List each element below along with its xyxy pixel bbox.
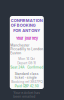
staticText: Seat 24A Confirmed <box>10 65 43 69</box>
staticText: Paid GBP 42.50 <box>15 84 39 88</box>
staticText: Booking ref XK47PQ <box>11 80 42 84</box>
staticText: CONFIRMATION OF BOOKING <box>11 18 43 28</box>
staticText: Your journey <box>16 36 38 41</box>
staticText: Mon 14 Oct <box>18 57 35 61</box>
staticText: FOR ANTONY <box>13 28 40 33</box>
staticText: Standard class ticket - single <box>15 72 39 79</box>
staticText: Manchester Piccadilly to London Euston <box>10 43 43 55</box>
staticText: Your e-ticket has been emailed <box>13 91 40 99</box>
staticText: Depart 08:15 <box>17 61 36 65</box>
